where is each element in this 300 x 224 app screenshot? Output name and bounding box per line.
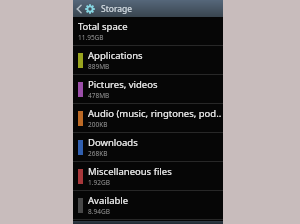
staticText: Downloads — [88, 136, 138, 149]
button[interactable]: Available — [73, 191, 223, 219]
staticText: 8.94GB — [88, 207, 110, 216]
staticText: 11.95GB — [78, 33, 104, 42]
staticText: 478MB — [88, 91, 110, 100]
button[interactable]: Pictures, videos — [73, 75, 223, 103]
button[interactable]: Applications — [73, 46, 223, 74]
staticText: 268KB — [88, 149, 108, 158]
button[interactable]: Miscellaneous files — [73, 162, 223, 190]
button[interactable]: Audio (music, ringtones, pod.. — [73, 104, 223, 132]
staticText: 1.92GB — [88, 178, 110, 187]
staticText: 200KB — [88, 120, 108, 129]
staticText: Miscellaneous files — [88, 165, 172, 178]
staticText: SD card — [78, 221, 106, 224]
button[interactable]: Downloads — [73, 133, 223, 161]
button[interactable]: Total space — [73, 17, 223, 45]
staticText: Storage — [101, 3, 133, 15]
staticText: Available — [88, 194, 129, 207]
staticText: Audio (music, ringtones, pod.. — [88, 107, 222, 120]
button[interactable]: Navigate up to Settings — [73, 0, 97, 17]
staticText: Pictures, videos — [88, 78, 158, 91]
staticText: 889MB — [88, 62, 110, 71]
staticText: Total space — [78, 20, 128, 33]
staticText: Applications — [88, 49, 143, 62]
